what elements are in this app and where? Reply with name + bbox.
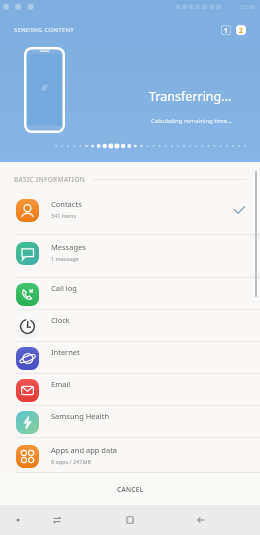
staticText: Samsung Health bbox=[51, 411, 110, 421]
staticText: Clock bbox=[51, 315, 70, 325]
staticText: Email bbox=[51, 379, 71, 389]
button[interactable]: Recents bbox=[28, 505, 86, 535]
staticText: Calculating remaining time... bbox=[151, 117, 232, 125]
staticText: 2 bbox=[239, 26, 243, 35]
staticText: 12:45 bbox=[240, 3, 256, 11]
button[interactable]: Email bbox=[0, 374, 260, 406]
button[interactable]: Contacts bbox=[0, 192, 260, 235]
staticText: 341 items bbox=[51, 212, 77, 219]
staticText: CANCEL bbox=[117, 485, 144, 494]
staticText: Contacts bbox=[51, 199, 82, 209]
staticText: 1 message bbox=[51, 255, 79, 262]
staticText: 8 apps / 247MB bbox=[51, 458, 91, 465]
staticText: Messages bbox=[51, 242, 86, 252]
staticText: Apps and app data bbox=[51, 445, 118, 455]
button[interactable]: Assistant bbox=[0, 505, 36, 535]
staticText: Call log bbox=[51, 283, 77, 293]
button[interactable]: Internet bbox=[0, 342, 260, 374]
staticText: Transferring... bbox=[149, 88, 232, 105]
button[interactable]: Messages bbox=[0, 235, 260, 278]
button[interactable]: Home bbox=[101, 505, 159, 535]
button[interactable]: Samsung Health bbox=[0, 406, 260, 438]
staticText: SENDING CONTENT bbox=[14, 26, 74, 34]
button[interactable]: CANCEL bbox=[0, 473, 260, 505]
button[interactable]: Call log bbox=[0, 278, 260, 310]
button[interactable]: Clock bbox=[0, 310, 260, 342]
button[interactable]: Apps and app data bbox=[0, 438, 260, 473]
staticText: BASIC INFORMATION bbox=[14, 175, 86, 184]
staticText: 1 bbox=[224, 26, 228, 35]
staticText: Internet bbox=[51, 347, 80, 357]
button[interactable]: Back bbox=[172, 505, 230, 535]
